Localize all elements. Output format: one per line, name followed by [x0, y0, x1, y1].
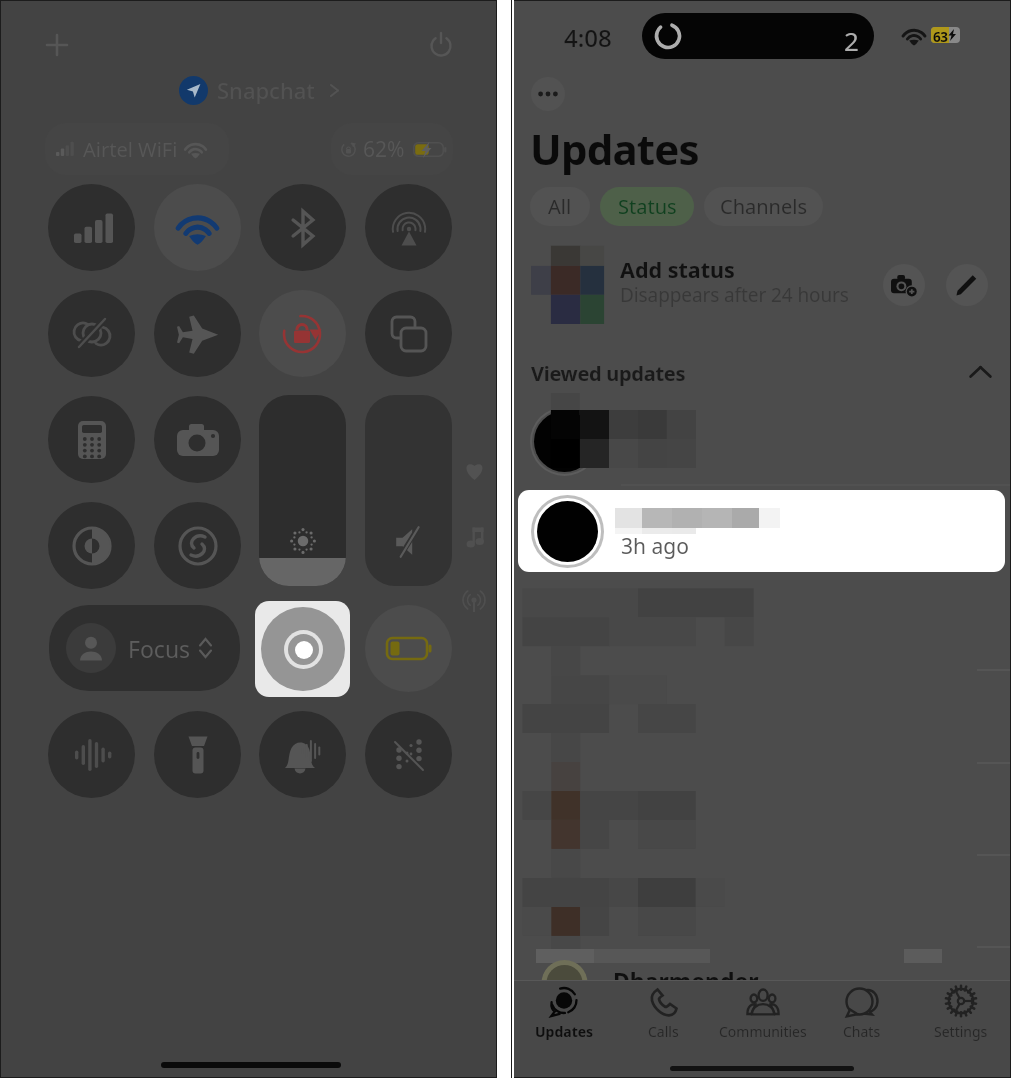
button[interactable]: More options: [531, 77, 565, 111]
staticText: Viewed updates: [531, 360, 686, 387]
button[interactable]: Low power mode: [365, 605, 452, 692]
button[interactable]: All: [530, 187, 590, 226]
button[interactable]: Chats: [812, 981, 911, 1044]
button[interactable]: Channels: [704, 187, 823, 226]
button[interactable]: Camera: [154, 396, 241, 483]
button[interactable]: Snapchat: [179, 74, 342, 106]
staticText: Chats: [843, 1022, 881, 1041]
staticText: Disappears after 24 hours: [620, 282, 849, 308]
button[interactable]: Shazam: [154, 502, 241, 589]
staticText: Focus: [128, 633, 191, 664]
button[interactable]: Write text status: [946, 264, 988, 306]
button[interactable]: Volume: [365, 395, 452, 586]
button[interactable]: Screen mirroring: [365, 290, 452, 377]
staticText: 4:08: [564, 21, 612, 54]
staticText: Add status: [620, 255, 735, 284]
button[interactable]: [514, 353, 1010, 391]
staticText: Status: [618, 193, 677, 220]
button[interactable]: Reduce noise: [365, 711, 452, 798]
button[interactable]: Power off: [426, 30, 456, 60]
staticText: 3h ago: [621, 532, 689, 561]
button[interactable]: 3h ago: [518, 490, 1005, 572]
button[interactable]: Sound recognition: [48, 711, 135, 798]
button[interactable]: Status: [600, 187, 694, 226]
button[interactable]: Settings: [911, 981, 1010, 1044]
staticText: Calls: [648, 1022, 679, 1041]
button[interactable]: Calls: [614, 981, 713, 1044]
staticText: Settings: [934, 1022, 988, 1041]
staticText: 62%: [363, 135, 405, 164]
button[interactable]: Rotation lock: [259, 290, 346, 377]
button[interactable]: Screen recording: [255, 601, 350, 697]
button[interactable]: Updates: [514, 981, 614, 1044]
button[interactable]: Alarm: [259, 711, 346, 798]
staticText: 2: [844, 23, 859, 58]
button[interactable]: Communities: [713, 981, 812, 1044]
staticText: Snapchat: [217, 75, 315, 105]
button[interactable]: AirDrop: [365, 184, 452, 271]
staticText: Airtel WiFi: [83, 136, 178, 163]
staticText: 63: [933, 28, 948, 43]
button[interactable]: Flashlight: [154, 711, 241, 798]
button[interactable]: Airplane mode: [154, 290, 241, 377]
button[interactable]: Calculator: [48, 396, 135, 483]
button[interactable]: Bluetooth: [259, 184, 346, 271]
staticText: All: [548, 193, 572, 220]
button[interactable]: Dark mode: [48, 502, 135, 589]
button[interactable]: Add a control: [42, 30, 72, 60]
staticText: Updates: [535, 1022, 594, 1041]
button[interactable]: Cellular data: [48, 184, 135, 271]
button[interactable]: Focus: [49, 605, 240, 691]
button[interactable]: Take photo status: [883, 264, 925, 306]
button[interactable]: [514, 245, 1010, 323]
staticText: Communities: [719, 1022, 807, 1041]
button[interactable]: Personal hotspot: [48, 290, 135, 377]
staticText: Updates: [530, 120, 699, 177]
button[interactable]: Wi-Fi: [154, 184, 241, 271]
staticText: Channels: [720, 193, 807, 220]
staticText: Dharmender: [613, 965, 759, 996]
button[interactable]: Brightness: [259, 395, 346, 586]
